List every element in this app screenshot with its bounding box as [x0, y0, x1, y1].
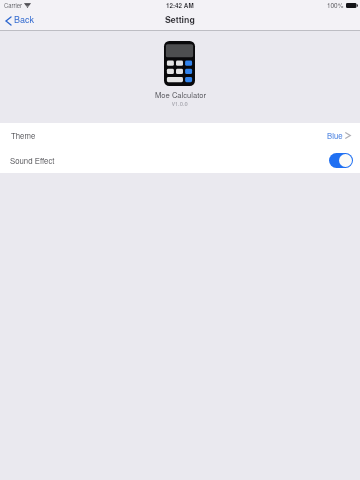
- staticText: Sound Effect: [10, 155, 55, 166]
- staticText: v1.0.0: [172, 99, 188, 107]
- staticText: Back: [14, 13, 35, 26]
- button[interactable]: Back: [0, 10, 43, 29]
- button[interactable]: Sound Effect toggle: [329, 153, 353, 168]
- staticText: Moe Calculator: [155, 89, 206, 99]
- staticText: Carrier: [4, 1, 22, 9]
- staticText: Setting: [165, 13, 195, 26]
- staticText: 12:42 AM: [166, 1, 194, 10]
- button[interactable]: Sound Effect: [0, 148, 360, 173]
- staticText: Blue: [327, 130, 343, 141]
- staticText: 100%: [327, 1, 344, 10]
- staticText: Theme: [11, 130, 36, 141]
- button[interactable]: Theme: [0, 123, 360, 148]
